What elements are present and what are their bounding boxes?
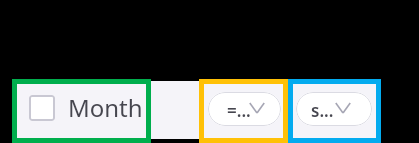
staticText: s... bbox=[311, 99, 334, 122]
staticText: =... bbox=[227, 99, 251, 122]
button[interactable]: Operator, equals bbox=[208, 92, 281, 126]
button[interactable]: Value bbox=[296, 92, 372, 126]
staticText: Month bbox=[68, 91, 143, 124]
button[interactable]: Month bbox=[17, 84, 146, 136]
